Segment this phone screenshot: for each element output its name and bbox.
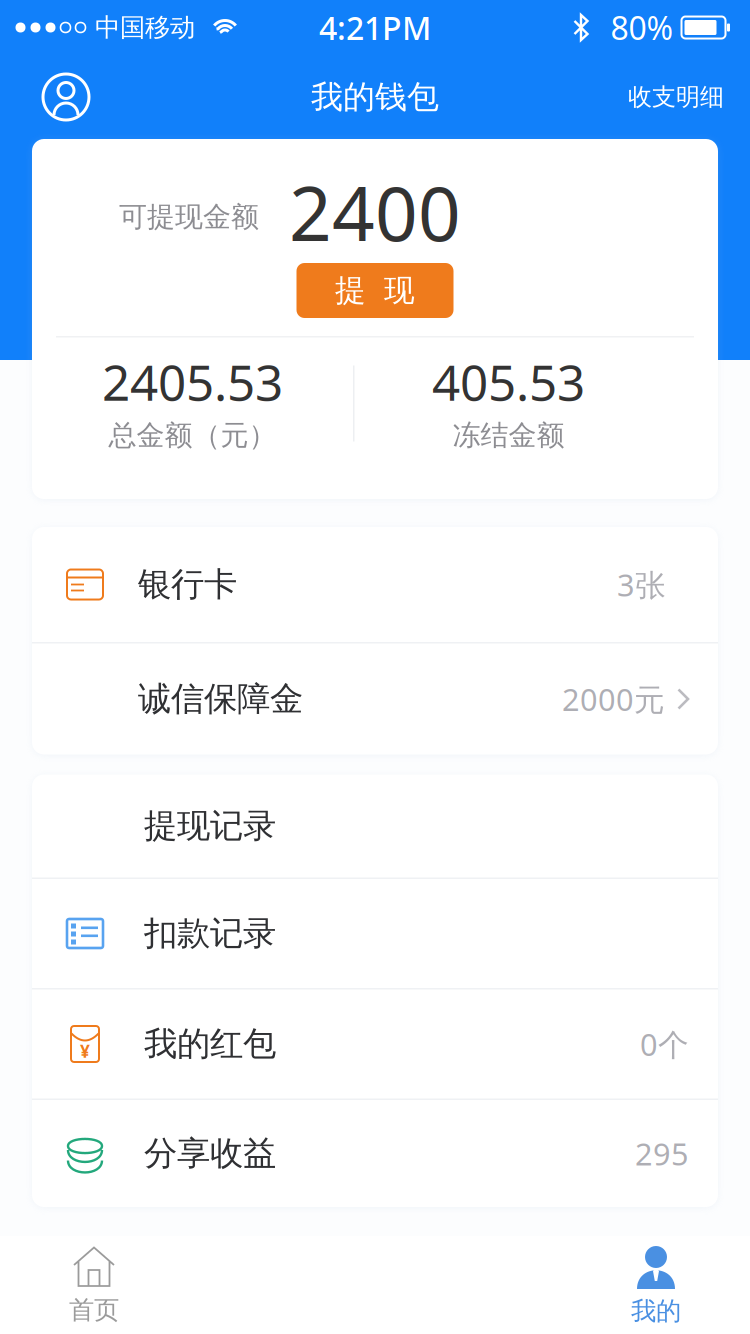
staticText: 2000元 [562, 679, 665, 719]
staticText: 收支明细 [628, 82, 724, 112]
staticText: 3张 [617, 564, 666, 605]
staticText: 银行卡 [138, 564, 237, 605]
staticText: 冻结金额 [452, 418, 564, 453]
button[interactable]: 扣款记录 [32, 879, 718, 988]
button[interactable]: 提现记录 [32, 774, 718, 877]
staticText: 2400 [289, 162, 461, 262]
staticText: 80% [610, 6, 673, 49]
staticText: 405.53 [432, 349, 585, 414]
staticText: 0个 [640, 1024, 689, 1064]
button[interactable]: 我的 [562, 1236, 750, 1334]
staticText: 扣款记录 [144, 913, 276, 954]
staticText: 4:21PM [319, 6, 431, 49]
staticText: 提 现 [335, 272, 415, 309]
staticText: 分享收益 [144, 1133, 276, 1174]
staticText: 可提现金额 [119, 200, 259, 234]
staticText: 首页 [69, 1294, 119, 1325]
button[interactable]: 收支明细 [618, 72, 750, 122]
staticText: 我的钱包 [311, 77, 439, 117]
button[interactable]: 银行卡 [32, 527, 718, 642]
staticText: 中国移动 [95, 12, 195, 43]
button[interactable]: 分享收益 [32, 1100, 718, 1207]
staticText: 诚信保障金 [138, 678, 303, 719]
staticText: ¥ [80, 1039, 90, 1062]
staticText: 总金额（元） [108, 418, 276, 453]
staticText: 我的 [631, 1295, 681, 1326]
button[interactable]: 首页 [0, 1236, 188, 1334]
staticText: 295 [635, 1133, 689, 1174]
button[interactable]: 提 现 [296, 263, 453, 318]
button[interactable]: 个人中心 [0, 66, 95, 128]
staticText: 提现记录 [144, 805, 276, 846]
staticText: 2405.53 [102, 349, 283, 414]
button[interactable]: ¥ [32, 989, 718, 1098]
staticText: 我的红包 [144, 1023, 276, 1064]
button[interactable]: 诚信保障金 [32, 643, 718, 754]
